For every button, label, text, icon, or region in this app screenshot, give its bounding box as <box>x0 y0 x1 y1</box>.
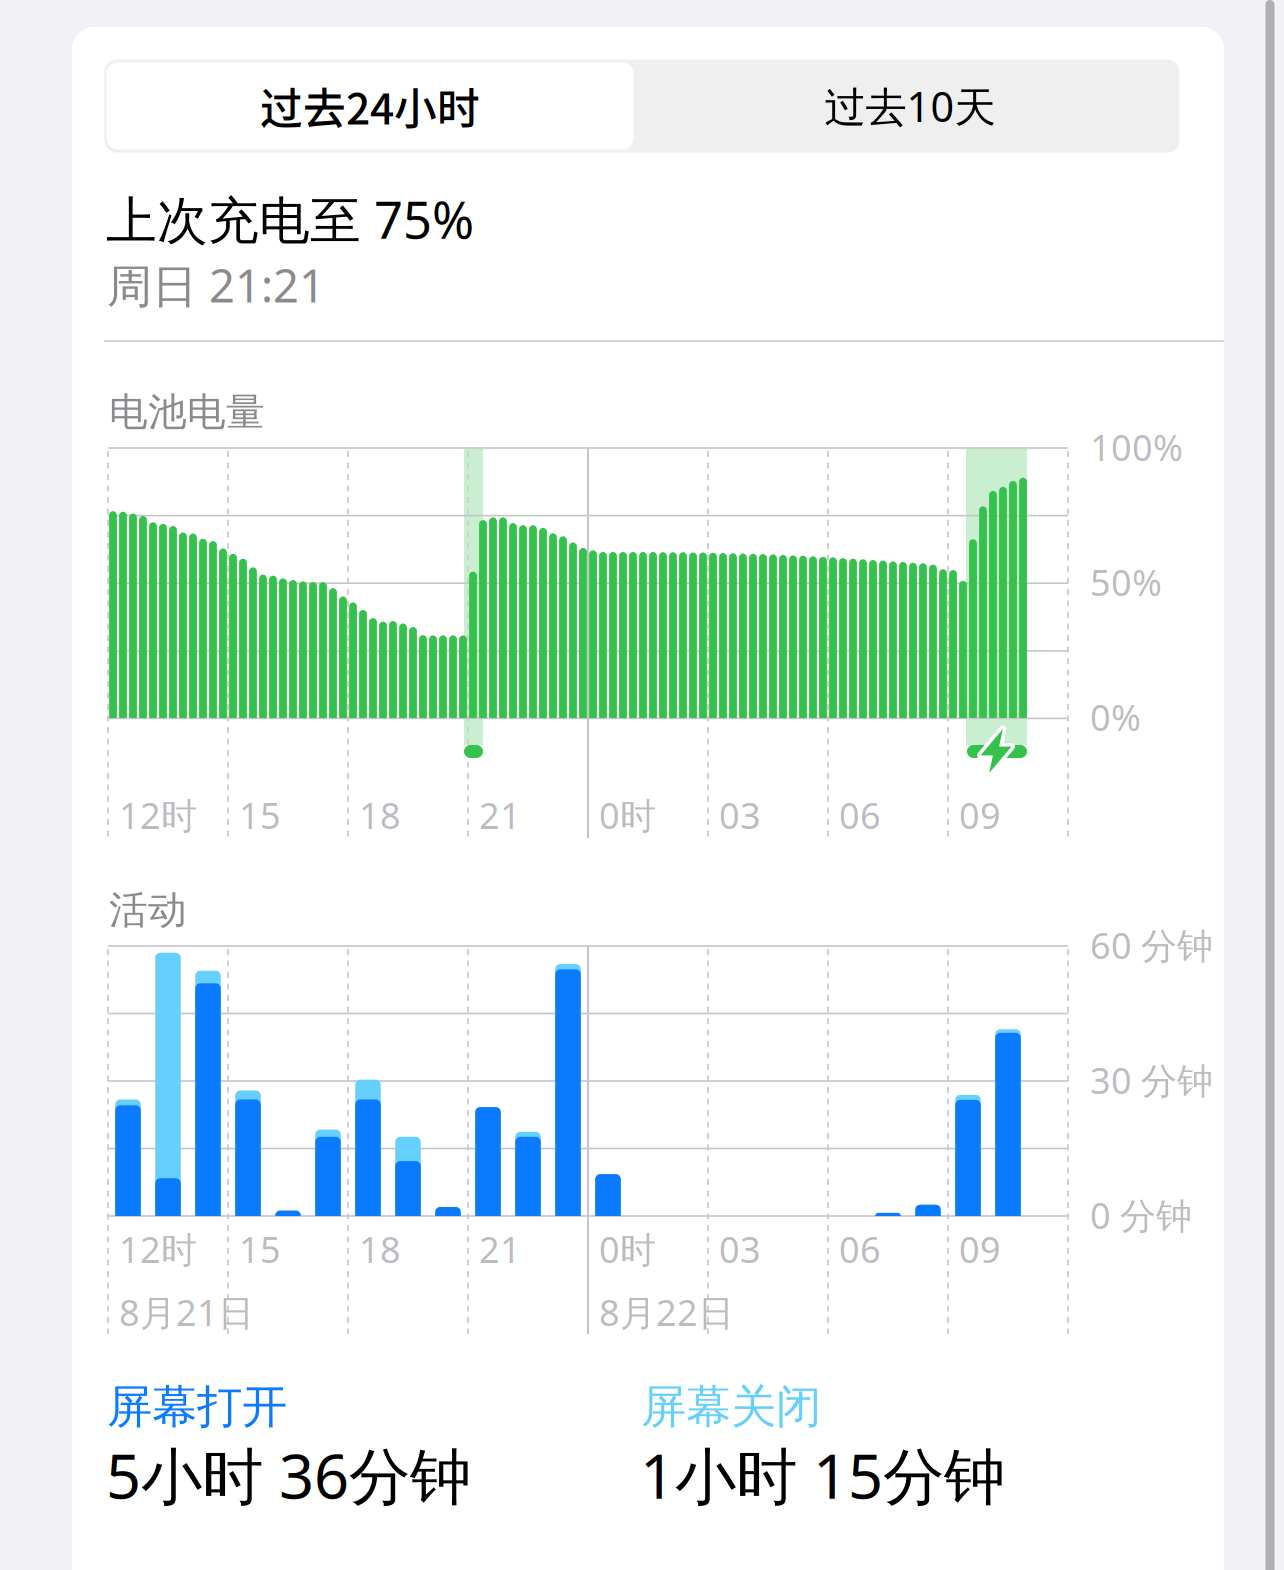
staticText: 09 <box>959 791 1001 839</box>
staticText: 06 <box>839 791 881 839</box>
staticText: 30 分钟 <box>1090 1056 1213 1104</box>
staticText: 60 分钟 <box>1090 921 1213 969</box>
button[interactable]: 过去24小时 <box>106 62 633 149</box>
staticText: 屏幕关闭 <box>641 1379 821 1435</box>
staticText: 50% <box>1090 558 1162 606</box>
staticText: 活动 <box>109 886 187 934</box>
staticText: 0时 <box>599 791 656 839</box>
staticText: 过去10天 <box>824 79 995 133</box>
button[interactable]: 过去10天 <box>640 62 1180 149</box>
staticText: 电池电量 <box>109 388 265 436</box>
staticText: 03 <box>719 791 761 839</box>
staticText: 过去24小时 <box>260 75 480 137</box>
staticText: 100% <box>1090 423 1183 471</box>
staticText: 12时 <box>119 791 197 839</box>
staticText: 屏幕打开 <box>107 1379 287 1435</box>
staticText: 06 <box>839 1225 881 1273</box>
staticText: 18 <box>359 1225 401 1273</box>
staticText: 0 分钟 <box>1090 1191 1192 1239</box>
staticText: 09 <box>959 1225 1001 1273</box>
staticText: 5小时 36分钟 <box>106 1434 471 1516</box>
staticText: 上次充电至 75% <box>106 185 474 253</box>
staticText: 周日 21:21 <box>107 255 325 315</box>
staticText: 15 <box>239 1225 281 1273</box>
staticText: 12时 <box>119 1225 197 1273</box>
staticText: 8月21日 <box>119 1288 254 1336</box>
staticText: 18 <box>359 791 401 839</box>
staticText: 0% <box>1090 693 1141 741</box>
staticText: 0时 <box>599 1225 656 1273</box>
staticText: 21 <box>479 1225 521 1273</box>
staticText: 21 <box>479 791 521 839</box>
staticText: 15 <box>239 791 281 839</box>
staticText: 1小时 15分钟 <box>640 1434 1005 1516</box>
staticText: 8月22日 <box>599 1288 734 1336</box>
staticText: 03 <box>719 1225 761 1273</box>
